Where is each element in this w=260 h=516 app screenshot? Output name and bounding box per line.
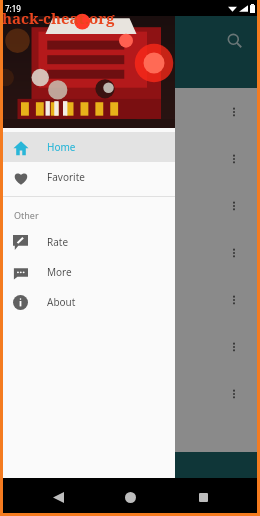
staticText: Home (47, 140, 76, 154)
button[interactable]: More options (222, 147, 246, 171)
button[interactable]: Rate (0, 227, 175, 257)
staticText: Other (14, 209, 39, 221)
staticText: About (47, 295, 76, 309)
button[interactable]: More options (222, 335, 246, 359)
button[interactable]: More options (222, 100, 246, 124)
button[interactable]: Bee District (0, 323, 260, 370)
button[interactable]: Favorite (0, 162, 175, 192)
staticText: CATEGORIES (14, 63, 80, 78)
button[interactable]: More (0, 257, 175, 287)
button[interactable]: County (0, 135, 260, 182)
staticText: hack-cheat.org (2, 8, 115, 28)
staticText: 7:19 (5, 3, 21, 14)
button[interactable]: Police (0, 370, 260, 417)
staticText: Fire (14, 292, 222, 307)
button[interactable]: EMS, (0, 182, 260, 229)
button[interactable]: More options (222, 241, 246, 265)
button[interactable]: Search (216, 22, 252, 58)
staticText: Rate (47, 235, 69, 249)
button[interactable]: Home (0, 132, 175, 162)
button[interactable]: Back (43, 482, 73, 512)
button[interactable]: Recent apps (188, 482, 218, 512)
staticText: Dispatch (14, 245, 222, 260)
button[interactable]: More options (222, 288, 246, 312)
staticText: EMS, (14, 198, 222, 213)
button[interactable]: Fire (0, 276, 260, 323)
button[interactable]: Dispatch (0, 229, 260, 276)
button[interactable]: More options (222, 382, 246, 406)
staticText: Beach (14, 104, 222, 119)
button[interactable]: Beach (0, 88, 260, 135)
staticText: Police (14, 386, 222, 401)
staticText: County (14, 151, 222, 166)
staticText: Bee District (14, 332, 222, 362)
button[interactable]: About (0, 287, 175, 317)
staticText: More (47, 265, 72, 279)
button[interactable]: Home (115, 482, 145, 512)
staticText: Favorite (47, 170, 85, 184)
button[interactable]: More options (222, 194, 246, 218)
